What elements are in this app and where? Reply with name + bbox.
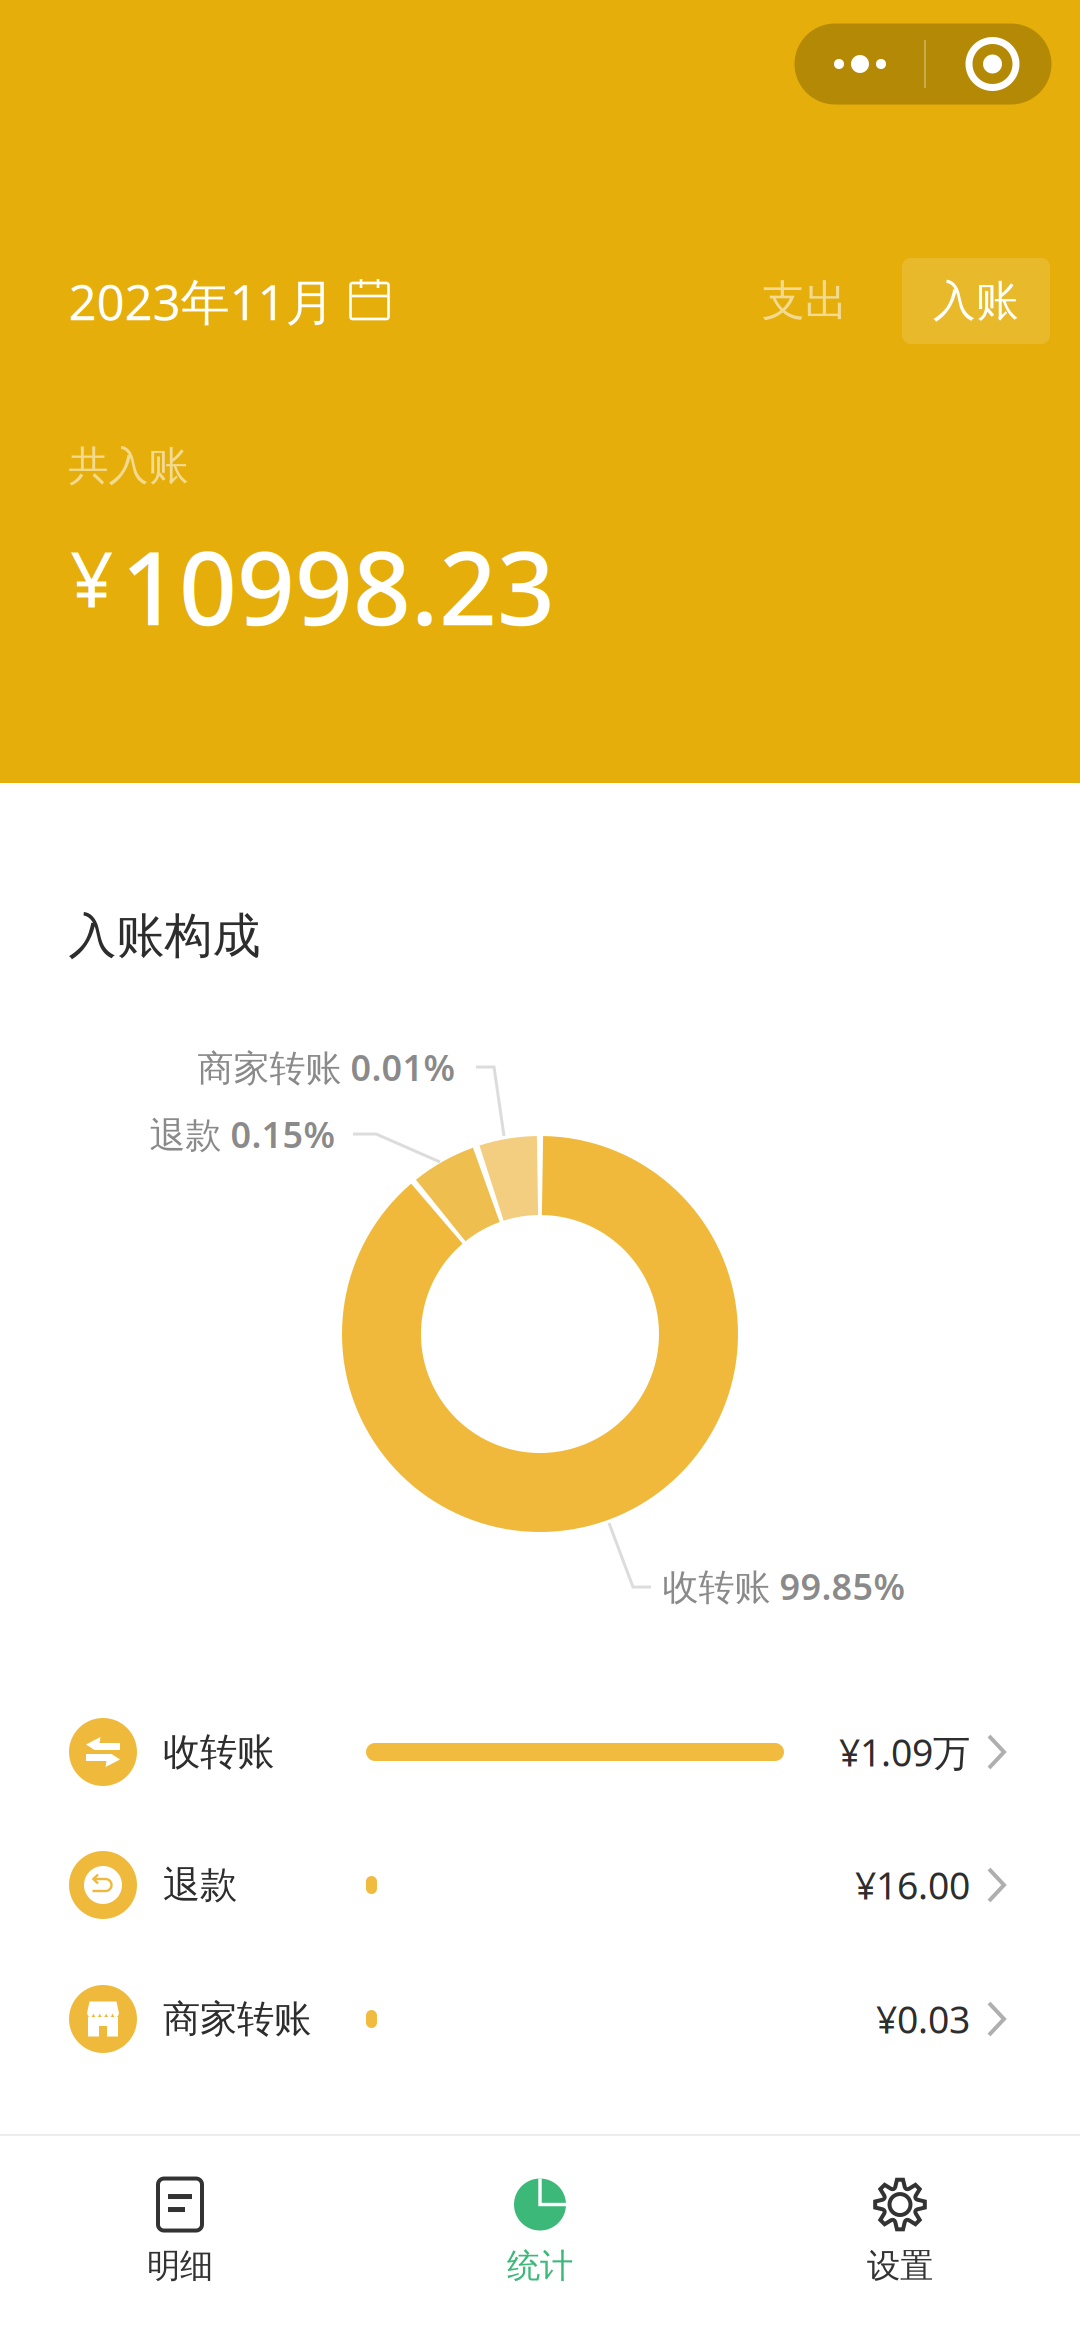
staticText: 收转账 <box>163 1729 274 1775</box>
staticText: 入账 <box>933 275 1019 327</box>
staticText: 设置 <box>867 2245 933 2286</box>
button[interactable]: 入账 <box>902 258 1050 344</box>
staticText: 退款 0.15% <box>149 1110 335 1158</box>
staticText: ¥1.09万 <box>839 1727 970 1777</box>
staticText: 共入账 <box>68 441 188 490</box>
button[interactable]: 2023年11月 <box>68 266 389 336</box>
staticText: 支出 <box>762 275 848 327</box>
staticText: ¥ <box>70 527 113 628</box>
button[interactable]: 商家转账 <box>0 0 1080 2328</box>
staticText: 10998.23 <box>121 519 555 653</box>
staticText: 商家转账 0.01% <box>197 1043 455 1091</box>
staticText: 收转账 99.85% <box>662 1562 905 1610</box>
staticText: 商家转账 <box>163 1996 311 2042</box>
staticText: 2023年11月 <box>68 268 334 334</box>
button[interactable]: 收转账 <box>0 0 1080 2328</box>
staticText: 统计 <box>507 2245 573 2286</box>
staticText: 入账构成 <box>68 906 260 965</box>
staticText: ¥0.03 <box>876 1994 970 2044</box>
button[interactable]: 设置 <box>720 2136 1080 2328</box>
button[interactable]: 支出 <box>735 258 875 344</box>
button[interactable]: 统计 <box>360 2136 720 2328</box>
staticText: 退款 <box>163 1862 237 1908</box>
button[interactable]: Mini program menu <box>794 23 1051 104</box>
staticText: 明细 <box>147 2245 213 2286</box>
button[interactable]: 明细 <box>0 2136 360 2328</box>
staticText: ¥16.00 <box>855 1860 970 1910</box>
button[interactable]: 退款 <box>0 0 1080 2328</box>
